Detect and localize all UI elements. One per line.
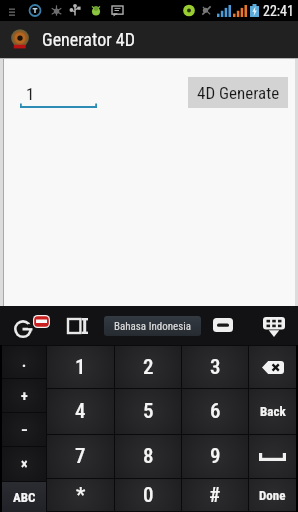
button[interactable]: 0: [115, 479, 181, 511]
button[interactable]: Backspace: [249, 346, 296, 388]
other: Space: [259, 453, 286, 461]
button[interactable]: +: [2, 379, 46, 412]
button[interactable]: ABC: [2, 482, 46, 512]
button[interactable]: Bahasa Indonesia: [104, 316, 201, 336]
button[interactable]: ×: [2, 447, 46, 481]
staticText: ABC: [13, 490, 36, 505]
staticText: 1: [75, 355, 86, 380]
button[interactable]: 3: [182, 346, 248, 388]
button[interactable]: Switch layout: [68, 318, 88, 334]
staticText: 5: [143, 399, 154, 424]
staticText: Back: [260, 404, 286, 419]
button[interactable]: #: [182, 479, 248, 511]
staticText: 7: [75, 444, 86, 469]
button[interactable]: 7: [47, 435, 114, 478]
staticText: 2: [143, 355, 154, 380]
staticText: .: [22, 354, 27, 370]
staticText: 4: [75, 399, 86, 424]
staticText: 1: [26, 84, 35, 104]
staticText: 0: [143, 483, 154, 508]
button[interactable]: 4: [47, 389, 114, 434]
button[interactable]: .: [2, 346, 46, 378]
staticText: Bahasa Indonesia: [114, 320, 192, 333]
button[interactable]: 9: [182, 435, 248, 478]
button[interactable]: Delete: [209, 314, 237, 336]
staticText: 6: [210, 399, 221, 424]
staticText: #: [209, 483, 221, 508]
staticText: Done: [259, 488, 286, 503]
button[interactable]: 6: [182, 389, 248, 434]
staticText: −: [21, 422, 28, 438]
staticText: *: [76, 483, 86, 508]
staticText: Generator 4D: [42, 29, 135, 50]
staticText: 4D Generate: [197, 83, 280, 103]
button[interactable]: 2: [115, 346, 181, 388]
button[interactable]: 1: [20, 84, 97, 108]
button[interactable]: Back: [249, 389, 296, 434]
button[interactable]: Hide keyboard: [261, 315, 287, 339]
button[interactable]: 1: [47, 346, 114, 388]
button[interactable]: −: [2, 413, 46, 446]
staticText: ×: [21, 456, 28, 472]
staticText: 22:41: [263, 3, 294, 19]
other: Backspace: [262, 361, 284, 374]
button[interactable]: Keyboard settings: [14, 313, 50, 339]
button[interactable]: 5: [115, 389, 181, 434]
staticText: 9: [210, 444, 221, 469]
staticText: 3: [210, 355, 221, 380]
button[interactable]: Done: [249, 479, 296, 511]
staticText: +: [21, 388, 28, 404]
button[interactable]: 8: [115, 435, 181, 478]
button[interactable]: 4D Generate: [188, 77, 288, 108]
button[interactable]: *: [47, 479, 114, 511]
button[interactable]: Space: [249, 435, 296, 478]
staticText: 8: [143, 444, 154, 469]
